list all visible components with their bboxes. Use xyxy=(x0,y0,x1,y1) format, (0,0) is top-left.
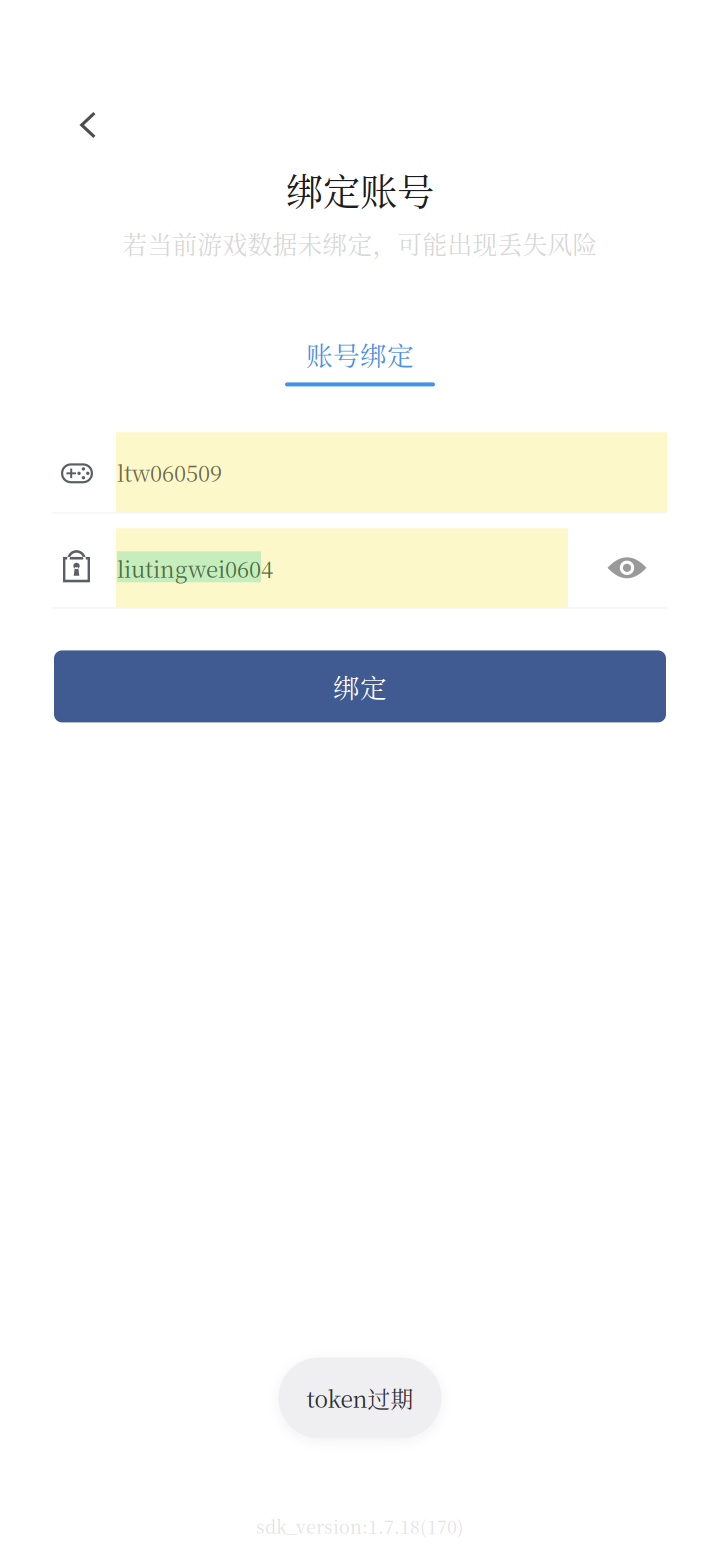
staticText: 账号绑定 xyxy=(306,335,414,373)
button[interactable]: 绑定 xyxy=(54,650,666,722)
staticText: 绑定账号 xyxy=(286,163,434,217)
staticText: token过期 xyxy=(306,1382,413,1414)
staticText: 绑定 xyxy=(333,667,387,706)
button[interactable]: 账号绑定 xyxy=(285,335,435,386)
staticText: liutingwei0604 xyxy=(117,552,273,584)
button[interactable]: Show password xyxy=(588,528,666,607)
button[interactable]: Back xyxy=(56,93,120,157)
staticText: 若当前游戏数据未绑定，可能出现丢失风险 xyxy=(122,226,597,261)
staticText: ltw060509 xyxy=(117,456,222,488)
staticText: sdk_version:1.7.18(170) xyxy=(256,1513,464,1539)
